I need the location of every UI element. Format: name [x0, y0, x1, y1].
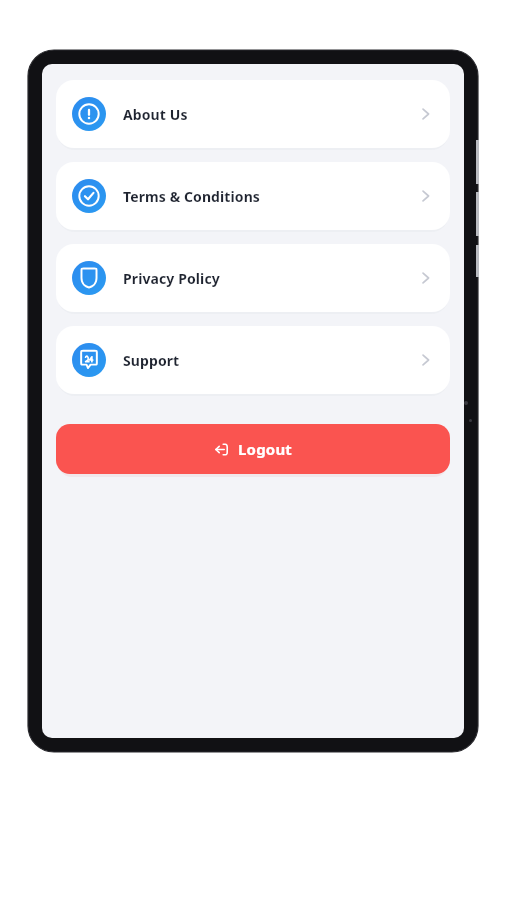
staticText: Logout [238, 439, 293, 459]
button[interactable]: Terms & Conditions [56, 162, 450, 230]
button[interactable]: Logout [56, 424, 450, 474]
button[interactable]: Support [56, 326, 450, 394]
button[interactable]: About Us [56, 80, 450, 148]
staticText: Privacy Policy [123, 269, 220, 288]
staticText: Terms & Conditions [123, 187, 260, 206]
staticText: Support [123, 351, 180, 370]
staticText: About Us [123, 105, 188, 124]
button[interactable]: Privacy Policy [56, 244, 450, 312]
